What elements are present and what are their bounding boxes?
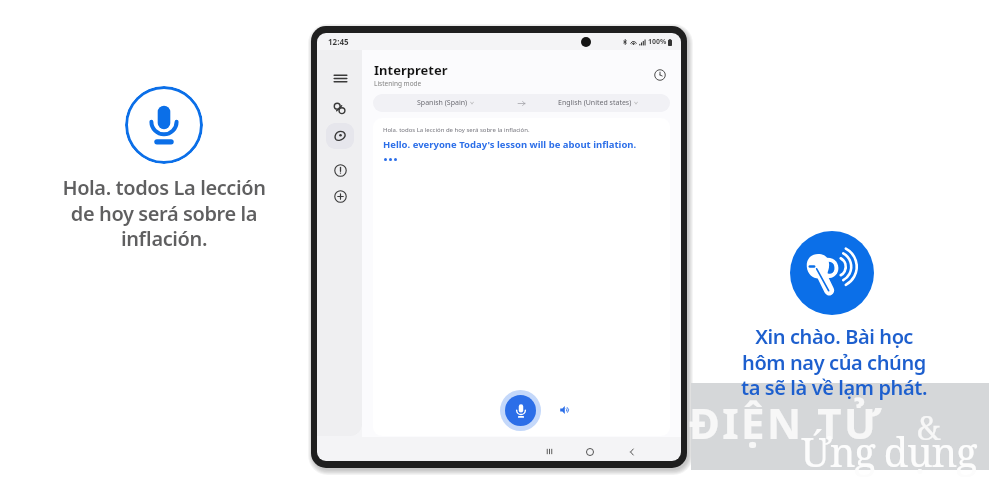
staticText: Listening mode bbox=[374, 79, 422, 88]
staticText: Ứng dụng bbox=[801, 424, 977, 478]
button[interactable]: Home bbox=[581, 443, 598, 460]
staticText: 100% bbox=[648, 37, 667, 47]
button[interactable]: Recents bbox=[541, 443, 558, 460]
staticText: Xin chào. Bài học hôm nay của chúng ta s… bbox=[722, 323, 946, 401]
staticText: Hola. todos La lección de hoy será sobre… bbox=[52, 174, 276, 252]
staticText: Hello. everyone Today's lesson will be a… bbox=[383, 138, 637, 151]
staticText: Spanish (Spain) bbox=[417, 98, 468, 108]
staticText: English (United states) bbox=[558, 98, 632, 108]
staticText: Hola. todos La lección de hoy será sobre… bbox=[383, 126, 530, 134]
button[interactable]: Speaker bbox=[557, 402, 573, 418]
button[interactable]: Link bbox=[327, 96, 353, 122]
staticText: ĐIỆN TỬ bbox=[689, 394, 884, 451]
button[interactable]: English (United states) bbox=[526, 94, 670, 112]
staticText: & bbox=[917, 406, 941, 450]
button[interactable]: Earbud audio output bbox=[790, 231, 874, 315]
button[interactable]: Record bbox=[505, 395, 536, 426]
button[interactable]: Menu bbox=[327, 65, 353, 91]
staticText: Interpreter bbox=[374, 61, 448, 79]
button[interactable]: Back bbox=[623, 443, 640, 460]
button[interactable]: Microphone bbox=[125, 86, 203, 164]
staticText: 12:45 bbox=[328, 36, 349, 47]
button[interactable]: History bbox=[651, 66, 669, 84]
button[interactable]: Spanish (Spain) bbox=[373, 94, 517, 112]
button[interactable]: Interpreter bbox=[326, 123, 354, 149]
button[interactable]: Info bbox=[327, 157, 353, 183]
button[interactable]: Add bbox=[327, 183, 353, 209]
